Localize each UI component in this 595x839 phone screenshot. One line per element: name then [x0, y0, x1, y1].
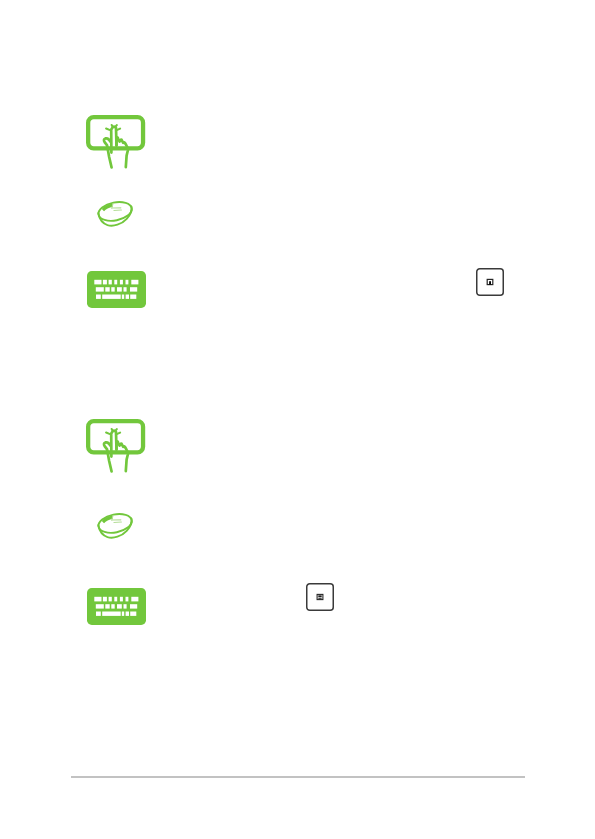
button[interactable]: Tap the touch screen panel [86, 419, 146, 475]
button[interactable]: Keyboard shortcut key [476, 268, 504, 296]
button[interactable]: Use the mouse [97, 198, 137, 230]
button[interactable]: Use the mouse [97, 510, 137, 542]
button[interactable]: Use the keyboard [87, 271, 146, 308]
button[interactable]: Tap the touch screen panel [86, 115, 146, 171]
button[interactable]: Keyboard function key [306, 583, 334, 611]
button[interactable]: Use the keyboard [87, 588, 146, 625]
